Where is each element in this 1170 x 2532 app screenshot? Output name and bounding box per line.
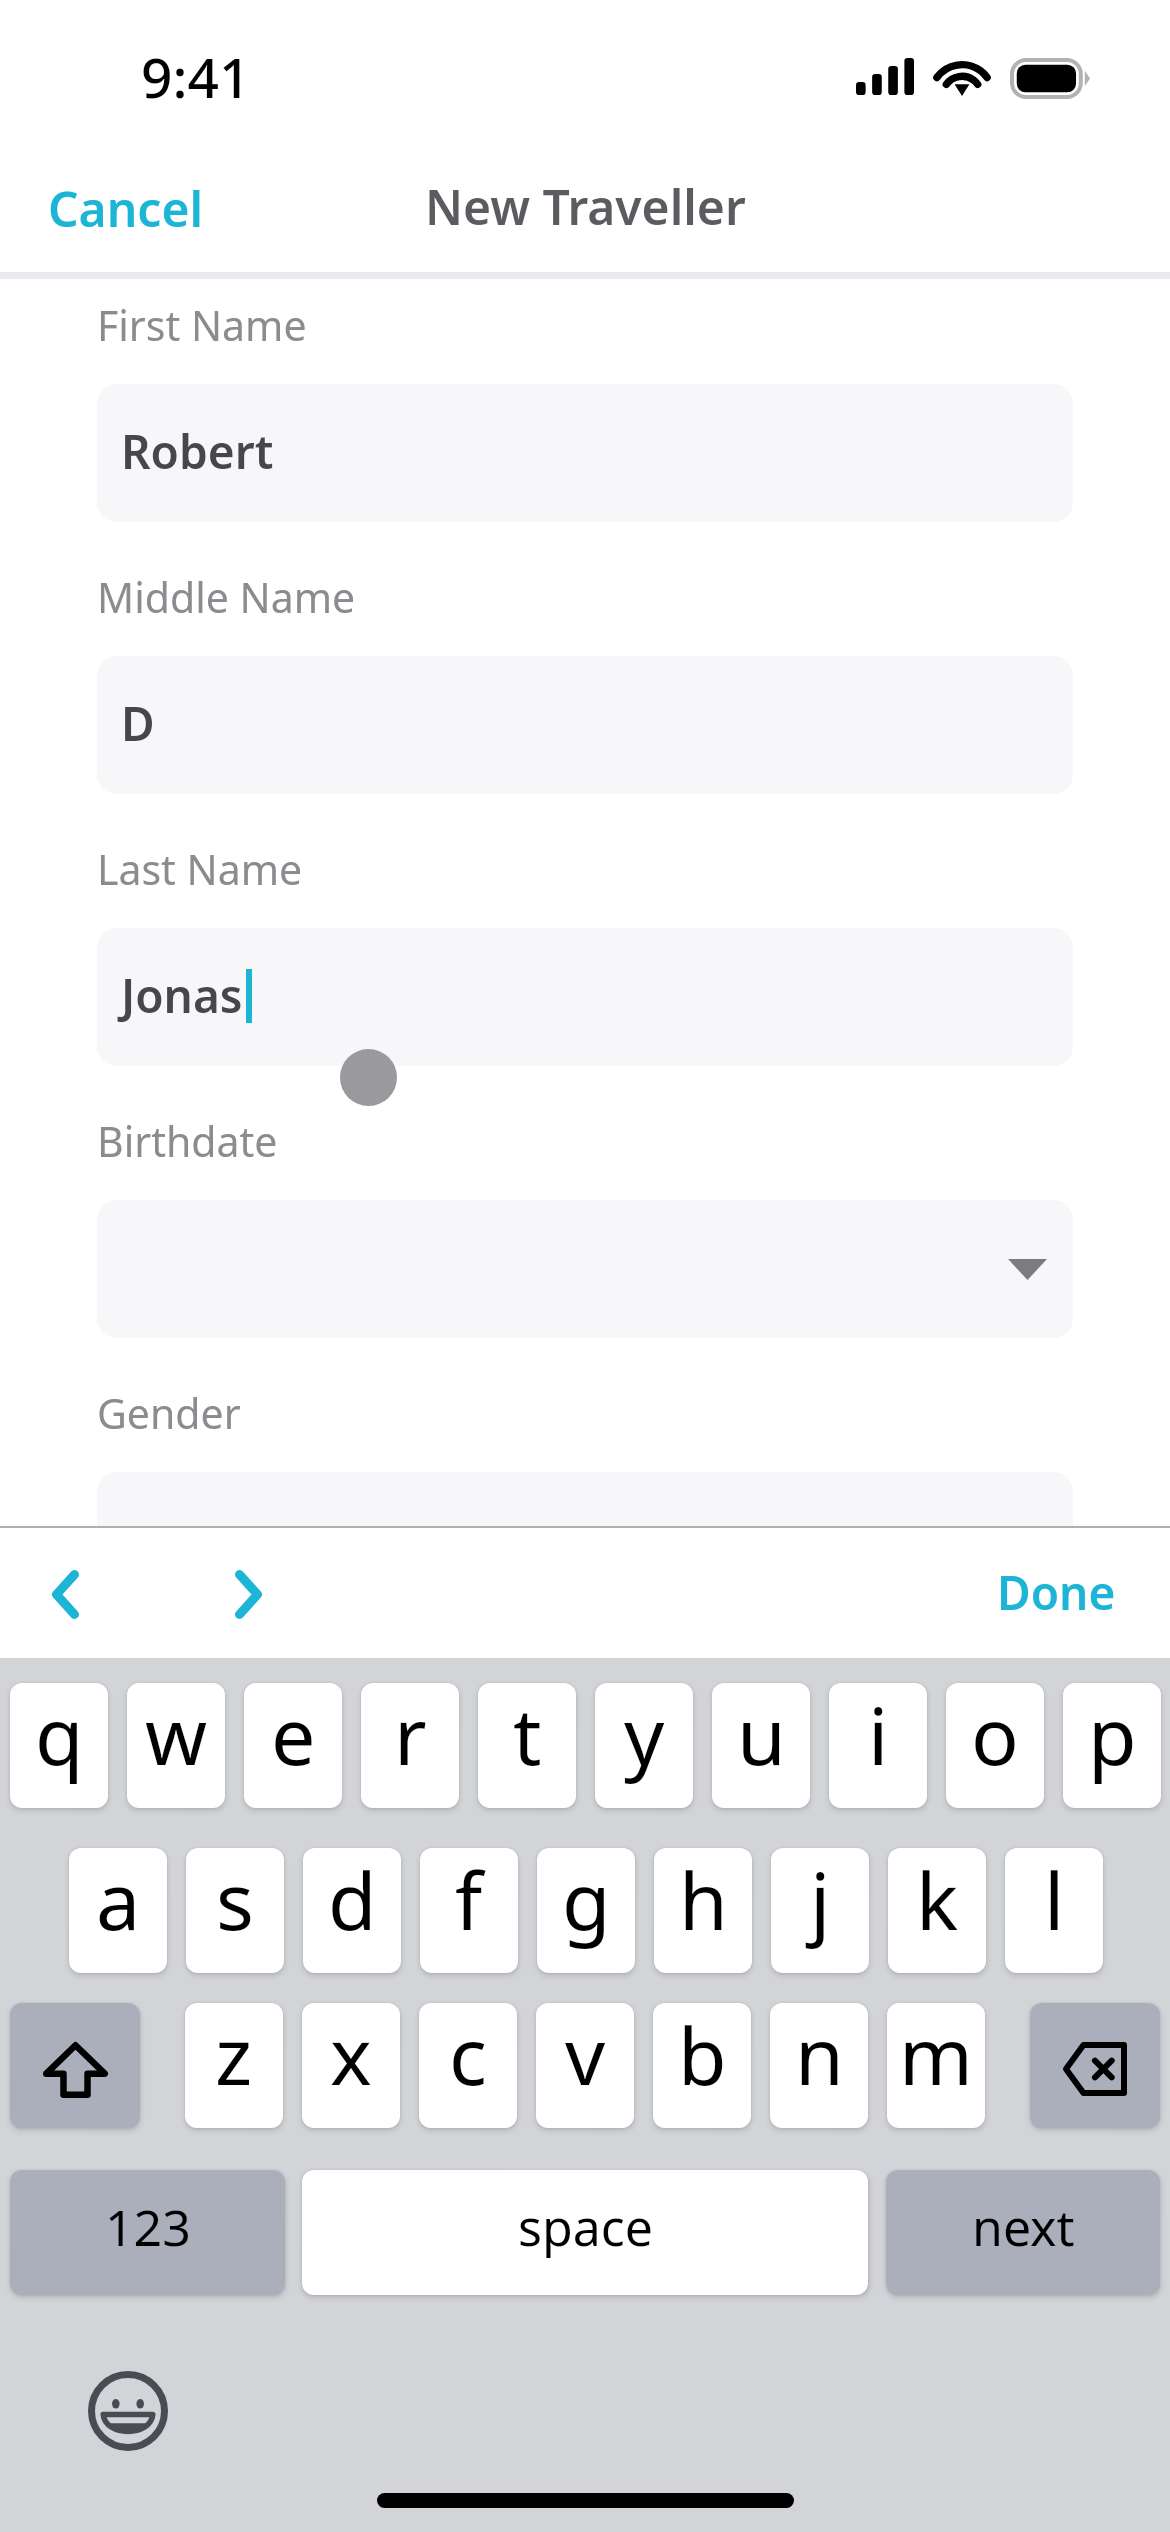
staticText: Robert — [121, 420, 274, 483]
button[interactable] — [97, 1472, 1073, 1610]
button[interactable]: next — [886, 2170, 1160, 2295]
button[interactable]: Shift — [10, 2003, 140, 2128]
button[interactable]: p — [1063, 1683, 1161, 1808]
button[interactable]: o — [946, 1683, 1044, 1808]
button[interactable]: space — [302, 2170, 868, 2295]
staticText: New Traveller — [425, 174, 746, 239]
button[interactable]: r — [361, 1683, 459, 1808]
button[interactable]: m — [887, 2003, 985, 2128]
button[interactable]: z — [185, 2003, 283, 2128]
staticText: Gender — [97, 1385, 241, 1441]
button[interactable]: f — [420, 1848, 518, 1973]
button[interactable]: x — [302, 2003, 400, 2128]
staticText: x — [330, 2003, 372, 2109]
staticText: b — [678, 2003, 727, 2109]
staticText: e — [271, 1683, 316, 1789]
button[interactable]: i — [829, 1683, 927, 1808]
button[interactable]: Emoji keyboard — [88, 2371, 168, 2451]
button[interactable]: Backspace — [1030, 2003, 1160, 2128]
staticText: t — [513, 1683, 542, 1789]
staticText: u — [737, 1683, 786, 1789]
staticText: Cancel — [48, 176, 204, 241]
staticText: y — [624, 1683, 665, 1789]
staticText: next — [972, 2193, 1075, 2261]
button[interactable]: v — [536, 2003, 634, 2128]
button[interactable]: Robert — [97, 384, 1073, 522]
staticText: D — [121, 692, 155, 755]
button[interactable]: h — [654, 1848, 752, 1973]
button[interactable]: u — [712, 1683, 810, 1808]
staticText: j — [810, 1848, 831, 1954]
staticText: w — [145, 1683, 208, 1789]
staticText: o — [971, 1683, 1019, 1789]
staticText: s — [216, 1848, 254, 1954]
button[interactable]: s — [186, 1848, 284, 1973]
button[interactable]: j — [771, 1848, 869, 1973]
staticText: 123 — [105, 2193, 191, 2261]
staticText: k — [916, 1848, 959, 1954]
staticText: c — [449, 2003, 487, 2109]
staticText: h — [679, 1848, 728, 1954]
staticText: z — [215, 2003, 253, 2109]
button[interactable]: b — [653, 2003, 751, 2128]
staticText: i — [868, 1683, 889, 1789]
button[interactable]: q — [10, 1683, 108, 1808]
button[interactable]: Jonas — [97, 928, 1073, 1066]
button[interactable]: y — [595, 1683, 693, 1808]
button[interactable]: Previous field — [10, 1539, 120, 1649]
staticText: Last Name — [97, 841, 303, 897]
button[interactable]: Next field — [193, 1539, 303, 1649]
button[interactable]: D — [97, 656, 1073, 794]
button[interactable]: Done — [957, 1531, 1156, 1654]
staticText: 9:41 — [141, 39, 251, 114]
button[interactable]: d — [303, 1848, 401, 1973]
staticText: Birthdate — [97, 1113, 278, 1169]
staticText: First Name — [97, 297, 307, 353]
staticText: m — [899, 2003, 973, 2109]
button[interactable]: w — [127, 1683, 225, 1808]
staticText: g — [562, 1848, 611, 1954]
button[interactable]: l — [1005, 1848, 1103, 1973]
staticText: space — [518, 2193, 653, 2261]
button[interactable]: e — [244, 1683, 342, 1808]
staticText: p — [1088, 1683, 1137, 1789]
button[interactable]: c — [419, 2003, 517, 2128]
button[interactable]: n — [770, 2003, 868, 2128]
staticText: n — [795, 2003, 844, 2109]
staticText: Done — [997, 1561, 1116, 1624]
button[interactable]: 123 — [10, 2170, 285, 2295]
button[interactable]: a — [69, 1848, 167, 1973]
button[interactable]: Cancel — [22, 164, 230, 261]
button[interactable]: g — [537, 1848, 635, 1973]
staticText: f — [455, 1848, 483, 1954]
staticText: q — [35, 1683, 84, 1789]
staticText: Middle Name — [97, 569, 356, 625]
staticText: d — [328, 1848, 377, 1954]
staticText: l — [1044, 1848, 1065, 1954]
staticText: r — [394, 1683, 427, 1789]
button[interactable] — [97, 1200, 1073, 1338]
button[interactable]: k — [888, 1848, 986, 1973]
button[interactable]: t — [478, 1683, 576, 1808]
staticText: Jonas — [121, 964, 243, 1027]
staticText: v — [565, 2003, 606, 2109]
staticText: a — [96, 1848, 141, 1954]
